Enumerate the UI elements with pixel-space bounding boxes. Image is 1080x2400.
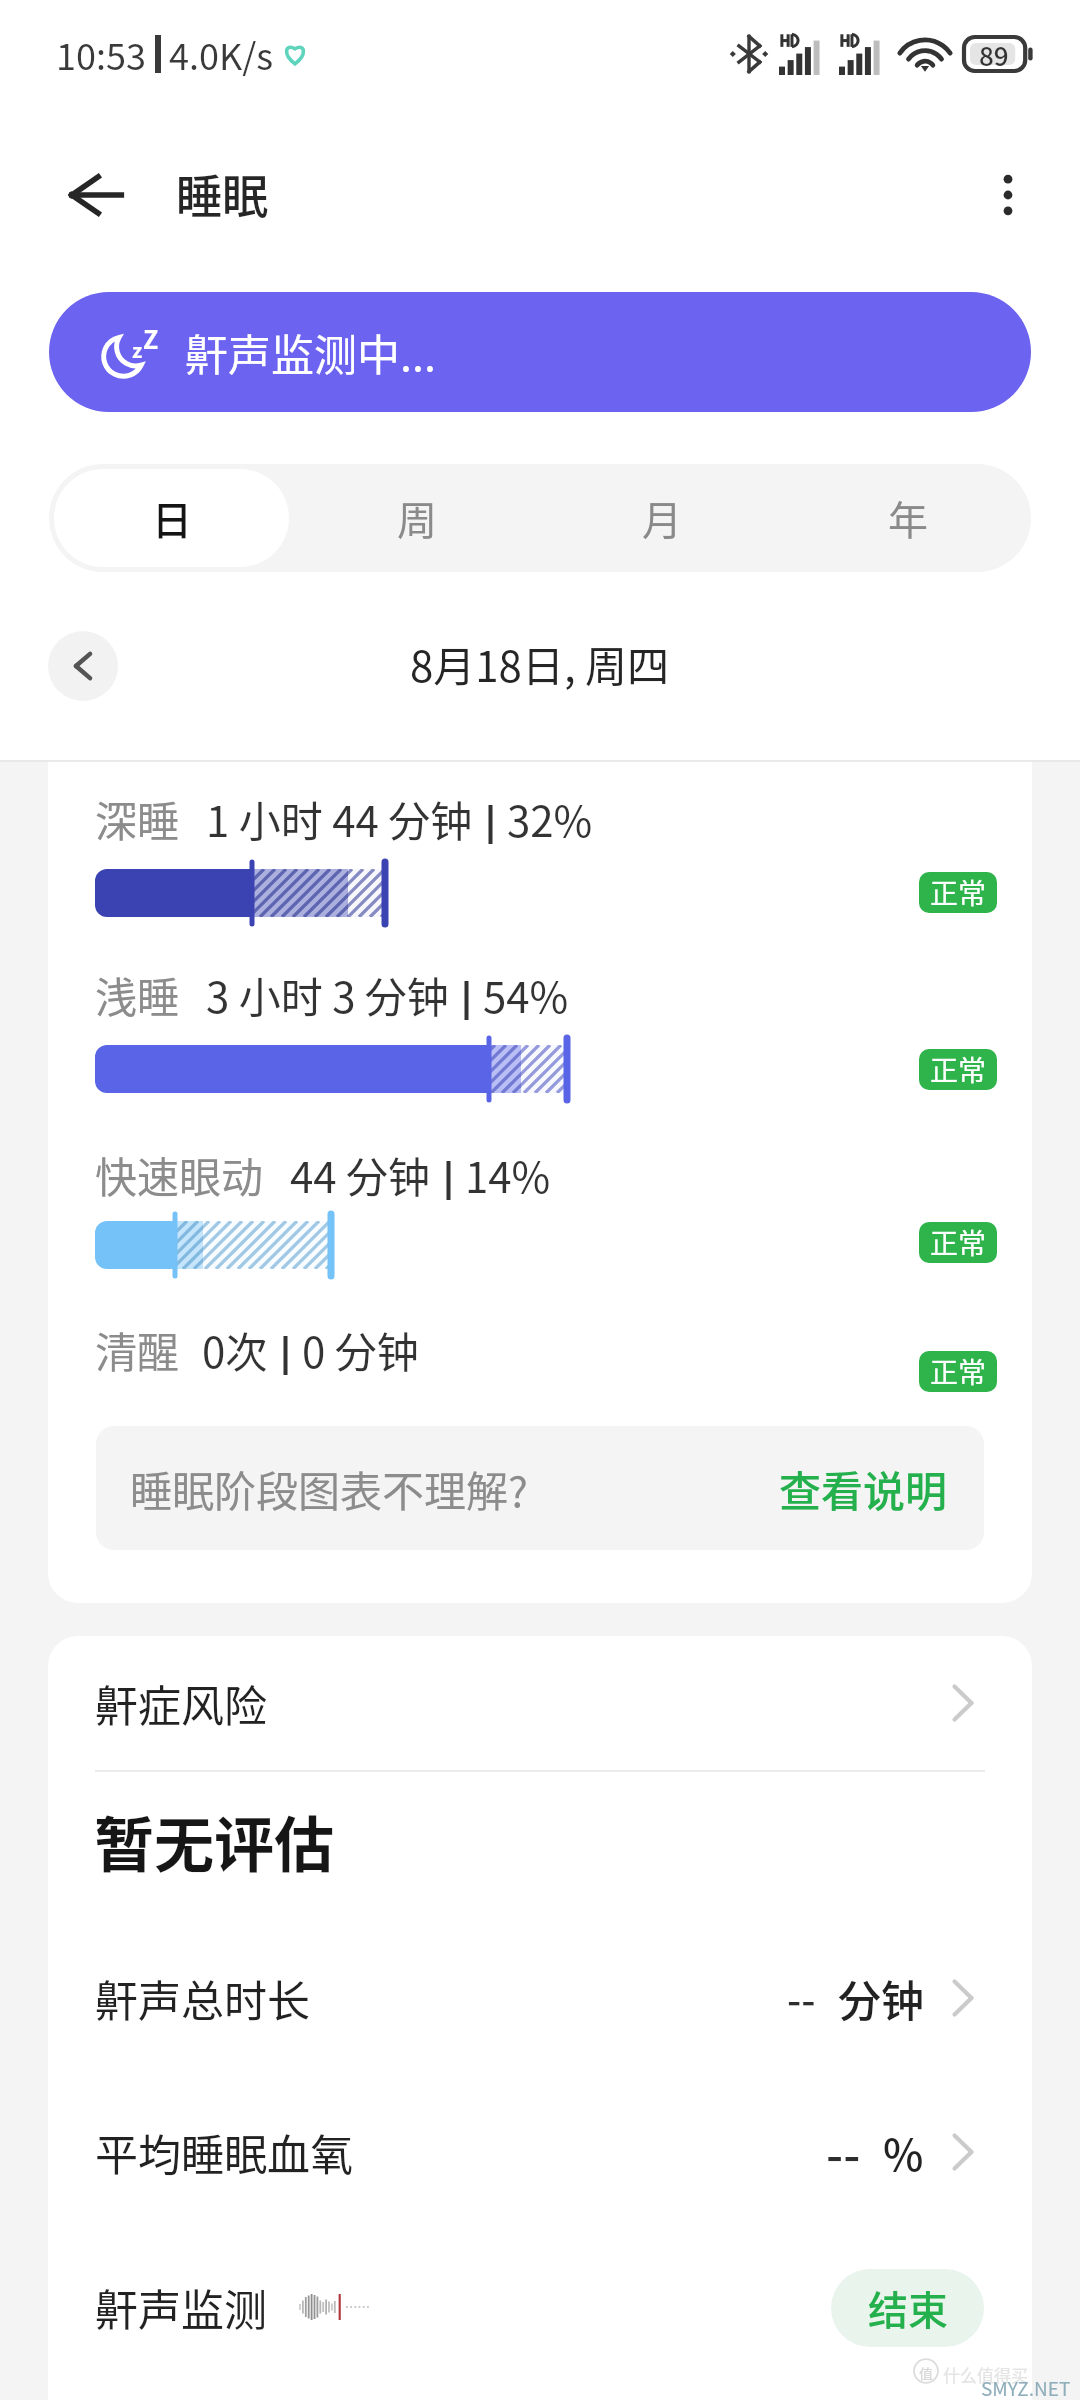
staticText: 鼾声监测: [95, 2276, 267, 2338]
staticText: 平均睡眠血氧: [95, 2121, 353, 2183]
staticText: 1 小时 44 分钟: [206, 788, 473, 849]
staticText: --: [787, 1969, 816, 2027]
staticText: 睡眠: [176, 160, 268, 227]
staticText: Z: [143, 320, 159, 356]
staticText: 快速眼动: [95, 1144, 264, 1205]
staticText: 日: [152, 489, 192, 547]
staticText: 正常: [930, 872, 987, 913]
staticText: 月: [642, 489, 682, 547]
button[interactable]: 睡眠阶段图表不理解?: [96, 1426, 984, 1550]
staticText: 睡眠阶段图表不理解?: [130, 1458, 528, 1519]
staticText: 0 分钟: [302, 1319, 419, 1380]
staticText: 4.0K/s: [169, 28, 274, 80]
staticText: 清醒: [95, 1319, 180, 1380]
staticText: 正常: [930, 1351, 987, 1392]
button[interactable]: 鼾症风险: [48, 1636, 1032, 1770]
button[interactable]: Back: [60, 159, 132, 231]
button[interactable]: 日: [54, 469, 289, 567]
staticText: 暂无评估: [94, 1797, 334, 1884]
button[interactable]: 结束: [831, 2269, 984, 2347]
staticText: 周: [397, 489, 437, 547]
staticText: 分钟: [838, 1967, 924, 2029]
staticText: 10:53: [56, 28, 146, 80]
button[interactable]: Previous day: [48, 631, 118, 701]
staticText: 14%: [465, 1144, 551, 1205]
staticText: 年: [888, 489, 928, 547]
staticText: 正常: [930, 1049, 987, 1090]
button[interactable]: z: [49, 292, 1031, 412]
staticText: 54%: [483, 964, 569, 1025]
staticText: 89: [979, 36, 1009, 72]
staticText: 3 小时 3 分钟: [206, 964, 449, 1025]
button[interactable]: More options: [972, 159, 1044, 231]
staticText: 鼾声监测中...: [185, 321, 436, 383]
staticText: 深睡: [95, 788, 180, 849]
staticText: --: [826, 2117, 861, 2187]
staticText: 结束: [868, 2279, 948, 2337]
staticText: 鼾症风险: [95, 1672, 267, 1734]
staticText: 正常: [930, 1222, 987, 1263]
button[interactable]: 月: [544, 469, 780, 567]
button[interactable]: 周: [299, 469, 534, 567]
staticText: 值: [919, 2363, 933, 2383]
button[interactable]: 平均睡眠血氧: [48, 2116, 1032, 2188]
staticText: 44 分钟: [290, 1144, 431, 1205]
staticText: 0次: [202, 1319, 268, 1380]
staticText: 32%: [507, 788, 593, 849]
staticText: SMYZ.NET: [981, 2374, 1071, 2400]
staticText: %: [883, 2121, 924, 2183]
button[interactable]: 年: [790, 469, 1026, 567]
staticText: 8月18日, 周四: [410, 633, 670, 694]
button[interactable]: 鼾声总时长: [48, 1962, 1032, 2034]
staticText: 浅睡: [95, 964, 180, 1025]
staticText: 查看说明: [779, 1458, 948, 1519]
staticText: z: [132, 335, 143, 364]
staticText: 鼾声总时长: [95, 1967, 310, 2029]
staticText: 什么值得买: [943, 2362, 1028, 2387]
